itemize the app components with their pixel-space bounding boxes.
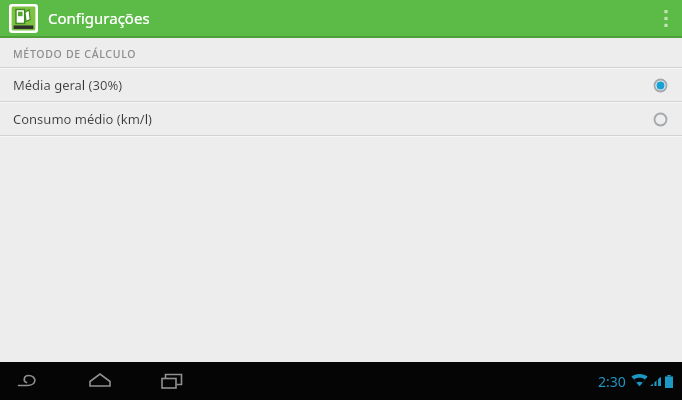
button[interactable]: Consumo médio (km/l) bbox=[0, 103, 682, 135]
button[interactable]: Home bbox=[76, 362, 124, 400]
button[interactable]: Média geral (30%) bbox=[0, 69, 682, 101]
staticText: 2:30 bbox=[598, 372, 626, 391]
staticText: Média geral (30%) bbox=[13, 76, 123, 94]
staticText: MÉTODO DE CÁLCULO bbox=[13, 47, 137, 61]
button[interactable]: More options bbox=[650, 0, 682, 36]
staticText: Consumo médio (km/l) bbox=[13, 110, 152, 128]
button[interactable]: Back bbox=[4, 362, 52, 400]
staticText: Configurações bbox=[48, 8, 150, 28]
button[interactable]: Recent apps bbox=[148, 362, 196, 400]
